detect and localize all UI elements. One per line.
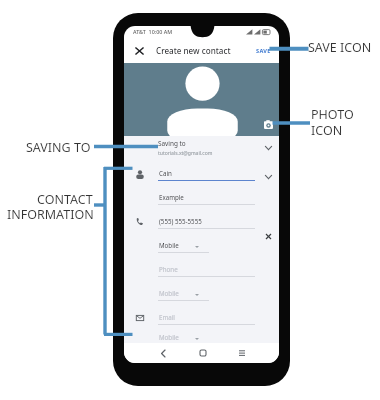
staticText: CONTACT	[37, 191, 93, 208]
button[interactable]: Mobile	[158, 241, 209, 255]
button[interactable]: Close	[129, 40, 150, 61]
staticText: Mobile	[159, 289, 179, 297]
button[interactable]: SAVE	[250, 43, 276, 58]
staticText: tutorials.xt@gmail.com	[158, 150, 213, 157]
staticText: Saving to	[158, 139, 186, 148]
staticText: Cain	[159, 169, 172, 177]
staticText: Email	[159, 313, 175, 321]
staticText: Mobile	[159, 333, 179, 341]
staticText: SAVE	[256, 47, 271, 55]
staticText: SAVE ICON	[308, 39, 372, 56]
button[interactable]: Home	[194, 344, 212, 362]
button[interactable]: Expand	[263, 142, 274, 153]
button[interactable]: Mobile	[158, 333, 209, 347]
button[interactable]: Recent apps	[233, 344, 251, 362]
staticText: ICON	[311, 122, 343, 139]
staticText: Mobile	[159, 241, 179, 249]
button[interactable]: Clear	[262, 230, 274, 242]
button[interactable]: Cain	[158, 169, 255, 183]
button[interactable]: Phone	[158, 265, 255, 279]
button[interactable]: Example	[158, 193, 255, 207]
staticText: (555) 555-5555	[159, 217, 202, 225]
staticText: Phone	[159, 265, 178, 273]
staticText: AT&T 10:00 AM	[133, 28, 173, 35]
staticText: Example	[159, 193, 184, 201]
button[interactable]: Saving to	[158, 139, 263, 159]
staticText: Create new contact	[156, 45, 231, 56]
staticText: INFORMATION	[7, 206, 94, 223]
button[interactable]: Email	[158, 313, 255, 327]
staticText: SAVING TO	[26, 139, 91, 156]
button[interactable]: Back	[154, 344, 172, 362]
button[interactable]: (555) 555-5555	[158, 217, 255, 231]
button[interactable]: Mobile	[158, 289, 209, 303]
button[interactable]: Add photo	[264, 120, 273, 129]
button[interactable]: Expand	[263, 171, 274, 182]
staticText: PHOTO	[311, 106, 354, 123]
